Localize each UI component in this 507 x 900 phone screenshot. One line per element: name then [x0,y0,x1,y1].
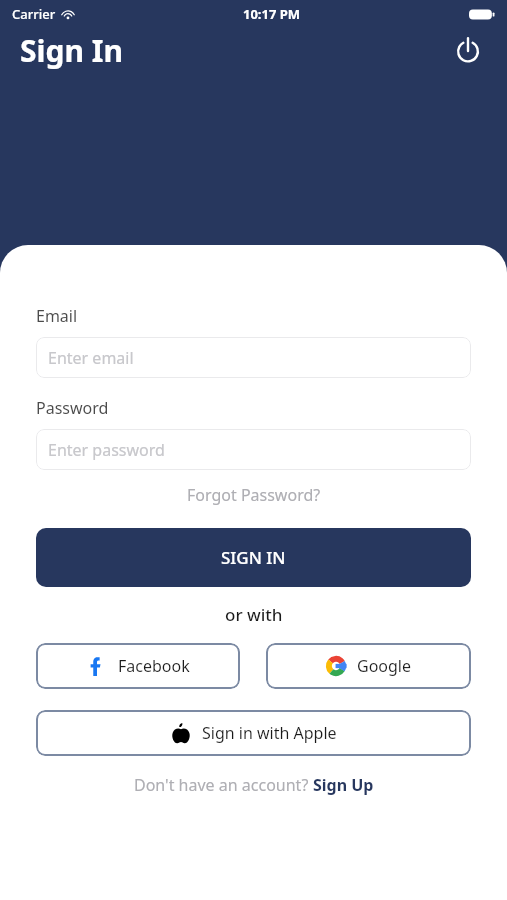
button[interactable]: SIGN IN [36,528,471,587]
staticText: Sign In [20,30,123,71]
button[interactable]: Enter email [36,337,471,378]
button[interactable]: Google [266,643,471,689]
staticText: 10:17 PM [243,5,301,23]
staticText: Sign Up [313,774,374,796]
button[interactable]: Power / Sign out [449,31,487,69]
staticText: Google [357,655,412,677]
staticText: Don't have an account? [134,774,313,796]
button[interactable]: Forgot Password? [36,484,471,506]
staticText: Password [36,397,109,419]
staticText: Facebook [118,655,190,677]
staticText: or with [225,603,283,626]
button[interactable]: Don't have an account? [36,774,471,796]
button[interactable]: Enter password [36,429,471,470]
button[interactable]: Facebook [36,643,240,689]
staticText: Enter email [48,347,134,369]
staticText: Carrier [12,5,56,23]
button[interactable]: Sign in with Apple [36,710,471,756]
staticText: Forgot Password? [187,484,321,506]
staticText: Sign in with Apple [202,722,337,744]
staticText: Enter password [48,439,165,461]
staticText: Email [36,305,78,327]
staticText: SIGN IN [221,546,286,569]
